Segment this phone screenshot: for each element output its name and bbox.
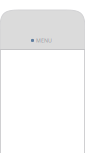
button[interactable]: MENU [32, 37, 53, 49]
staticText: MENU [36, 37, 52, 44]
